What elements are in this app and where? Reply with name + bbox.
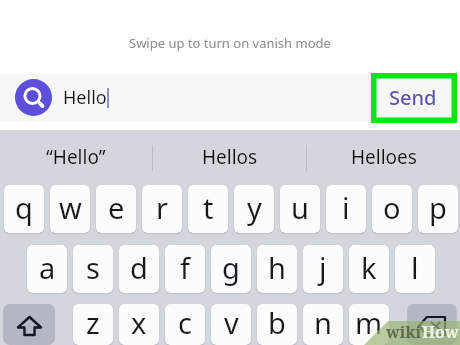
staticText: How: [422, 321, 459, 343]
button[interactable]: o: [372, 185, 412, 233]
button[interactable]: n: [303, 304, 343, 345]
staticText: y: [247, 188, 262, 227]
staticText: s: [86, 248, 100, 287]
button[interactable]: c: [165, 304, 205, 345]
button[interactable]: f: [165, 245, 205, 293]
staticText: o: [383, 188, 401, 227]
button[interactable]: Shift: [3, 304, 55, 345]
button[interactable]: q: [4, 185, 44, 233]
staticText: Swipe up to turn on vanish mode: [129, 34, 331, 52]
button[interactable]: v: [211, 304, 251, 345]
staticText: b: [268, 304, 286, 342]
staticText: wiki: [386, 321, 422, 343]
button[interactable]: x: [119, 304, 159, 345]
button[interactable]: j: [303, 245, 343, 293]
button[interactable]: a: [27, 245, 67, 293]
button[interactable]: w: [50, 185, 90, 233]
button[interactable]: “Hello”: [0, 130, 152, 185]
staticText: j: [319, 248, 327, 287]
staticText: i: [342, 188, 350, 227]
staticText: k: [361, 248, 377, 287]
button[interactable]: Hellos: [153, 130, 306, 185]
staticText: m: [355, 304, 383, 342]
staticText: c: [178, 304, 192, 342]
button[interactable]: m: [349, 304, 389, 345]
button[interactable]: y: [234, 185, 274, 233]
button[interactable]: Helloes: [307, 130, 460, 185]
button[interactable]: k: [349, 245, 389, 293]
button[interactable]: l: [395, 245, 435, 293]
button[interactable]: h: [257, 245, 297, 293]
staticText: z: [86, 304, 100, 342]
staticText: n: [314, 304, 332, 342]
button[interactable]: u: [280, 185, 320, 233]
staticText: h: [268, 248, 286, 287]
staticText: g: [222, 248, 240, 287]
button[interactable]: g: [211, 245, 251, 293]
staticText: w: [59, 188, 82, 227]
staticText: “Hello”: [46, 144, 106, 170]
staticText: Hello: [63, 85, 107, 110]
staticText: d: [130, 248, 148, 287]
staticText: l: [411, 248, 419, 287]
staticText: r: [156, 188, 168, 227]
button[interactable]: s: [73, 245, 113, 293]
staticText: e: [108, 188, 125, 227]
button[interactable]: Backspace: [407, 304, 457, 345]
staticText: q: [15, 188, 33, 227]
button[interactable]: e: [96, 185, 136, 233]
button[interactable]: p: [418, 185, 458, 233]
button[interactable]: i: [326, 185, 366, 233]
button[interactable]: Search: [15, 79, 52, 116]
staticText: t: [203, 188, 214, 227]
staticText: Send: [389, 84, 437, 111]
staticText: v: [224, 304, 239, 342]
staticText: x: [131, 304, 147, 342]
staticText: Helloes: [351, 144, 417, 170]
button[interactable]: r: [142, 185, 182, 233]
button[interactable]: t: [188, 185, 228, 233]
button[interactable]: Send: [389, 84, 437, 111]
staticText: Hellos: [202, 144, 258, 170]
button[interactable]: d: [119, 245, 159, 293]
button[interactable]: z: [73, 304, 113, 345]
staticText: u: [291, 188, 309, 227]
staticText: a: [39, 248, 56, 287]
staticText: p: [429, 188, 447, 227]
button[interactable]: b: [257, 304, 297, 345]
staticText: f: [180, 248, 190, 287]
